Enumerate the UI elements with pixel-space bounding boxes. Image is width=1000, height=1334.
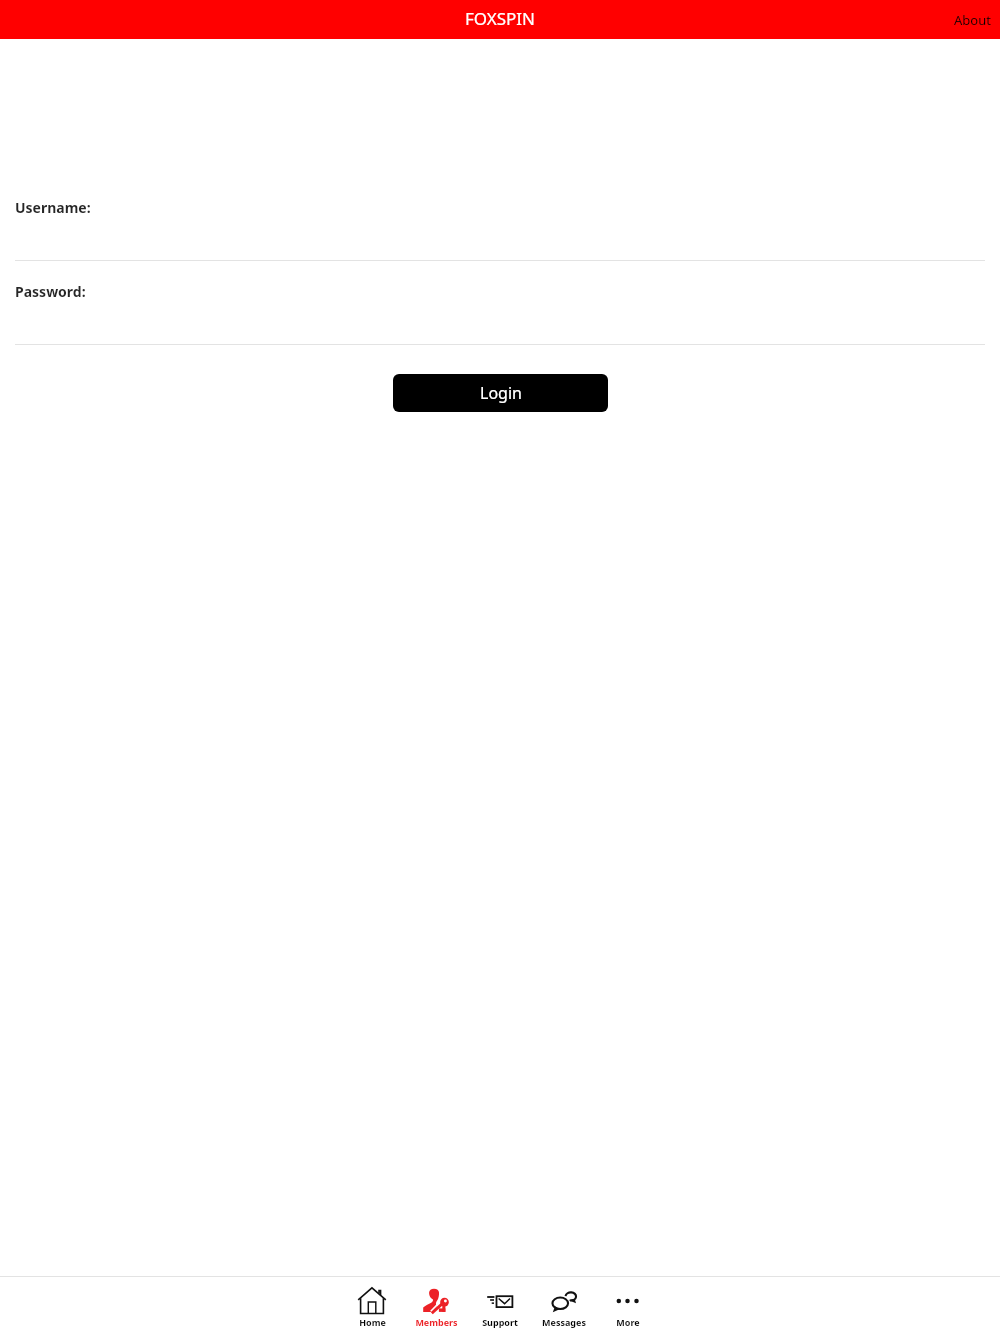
- button[interactable]: About: [946, 7, 1000, 33]
- button[interactable]: Support: [468, 1277, 532, 1328]
- other: More: [614, 1287, 642, 1315]
- staticText: About: [954, 11, 991, 29]
- staticText: FOXSPIN: [465, 7, 536, 30]
- staticText: More: [616, 1316, 640, 1328]
- staticText: Home: [359, 1316, 386, 1328]
- button[interactable]: Members: [404, 1277, 468, 1328]
- other: Support: [486, 1287, 514, 1315]
- staticText: Members: [415, 1316, 458, 1328]
- staticText: Support: [482, 1316, 518, 1328]
- button[interactable]: Login: [393, 374, 608, 412]
- button[interactable]: Messages: [532, 1277, 596, 1328]
- staticText: Username:: [15, 198, 91, 217]
- button[interactable]: Home: [340, 1277, 404, 1328]
- other: Members: [422, 1287, 450, 1315]
- other: Messages: [550, 1287, 578, 1315]
- other: Home: [358, 1287, 386, 1315]
- button[interactable]: More: [596, 1277, 660, 1328]
- staticText: Messages: [542, 1316, 586, 1328]
- staticText: Password:: [15, 282, 86, 301]
- staticText: Login: [480, 382, 522, 404]
